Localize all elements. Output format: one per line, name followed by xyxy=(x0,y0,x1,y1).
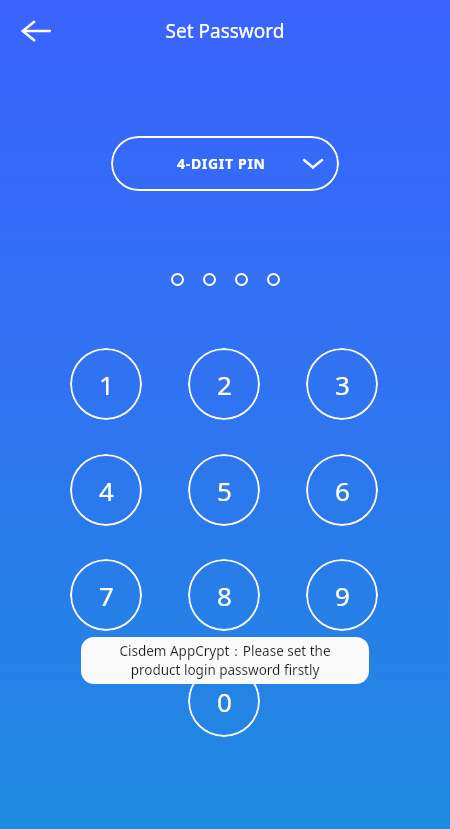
staticText: 4 xyxy=(99,473,114,508)
button[interactable]: 1 xyxy=(70,348,142,420)
staticText: 8 xyxy=(217,578,232,613)
button[interactable]: 7 xyxy=(70,559,142,631)
staticText: Set Password xyxy=(0,18,450,44)
button[interactable]: 8 xyxy=(188,559,260,631)
button[interactable]: 4-DIGIT PIN xyxy=(111,136,339,191)
button[interactable]: 0 xyxy=(188,665,260,737)
staticText: 4-DIGIT PIN xyxy=(177,154,266,173)
staticText: 1 xyxy=(99,367,114,402)
staticText: 5 xyxy=(217,473,232,508)
staticText: 9 xyxy=(335,578,350,613)
button[interactable]: 3 xyxy=(306,348,378,420)
button[interactable]: 6 xyxy=(306,454,378,526)
button[interactable]: Back xyxy=(12,7,60,55)
staticText: Cisdem AppCrypt：Please set the product l… xyxy=(119,642,331,679)
staticText: 7 xyxy=(99,578,114,613)
button[interactable]: 9 xyxy=(306,559,378,631)
button[interactable]: 5 xyxy=(188,454,260,526)
staticText: 6 xyxy=(335,473,350,508)
staticText: 0 xyxy=(217,684,232,719)
button[interactable]: 2 xyxy=(188,348,260,420)
button[interactable]: 4 xyxy=(70,454,142,526)
staticText: 2 xyxy=(217,367,232,402)
staticText: 3 xyxy=(335,367,350,402)
